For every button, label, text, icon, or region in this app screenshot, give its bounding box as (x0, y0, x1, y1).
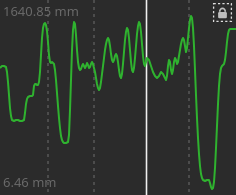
staticText: 1640.85 mm (3, 2, 79, 20)
staticText: 6.46 mm (3, 173, 57, 191)
button[interactable]: Lock scale (213, 3, 232, 22)
